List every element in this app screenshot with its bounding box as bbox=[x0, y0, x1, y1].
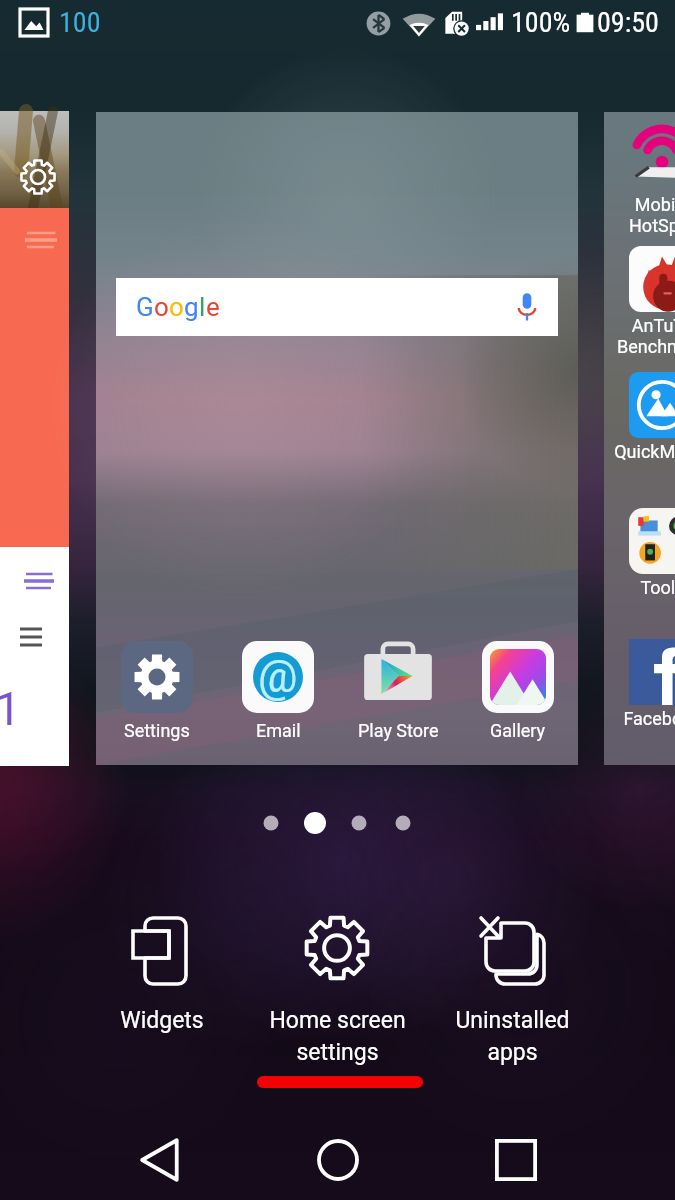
staticText: QuickMemo bbox=[614, 441, 675, 462]
button[interactable]: Gallery bbox=[468, 641, 568, 741]
staticText: Mobile HotSpot bbox=[629, 194, 675, 237]
button[interactable]: Play Store bbox=[348, 641, 448, 741]
staticText: @ bbox=[258, 651, 298, 701]
staticText: Play Store bbox=[358, 720, 439, 741]
button[interactable]: Uninstalled apps bbox=[422, 908, 602, 1068]
staticText: 100 bbox=[59, 6, 101, 39]
button[interactable]: Mobile HotSpot bbox=[612, 125, 675, 237]
button[interactable]: G bbox=[96, 112, 578, 765]
staticText: Widgets bbox=[120, 1007, 204, 1034]
button[interactable]: Settings bbox=[107, 641, 207, 741]
button[interactable]: Widgets bbox=[72, 908, 252, 1068]
staticText: Settings bbox=[124, 720, 190, 741]
staticText: l bbox=[199, 292, 206, 322]
button[interactable]: G bbox=[116, 278, 558, 336]
staticText: 09:50 bbox=[597, 6, 659, 39]
button[interactable]: AnTuTu Benchmark bbox=[612, 246, 675, 358]
staticText: Tools bbox=[640, 577, 675, 598]
button[interactable]: Tools bbox=[612, 508, 675, 598]
staticText: Facebook bbox=[623, 708, 675, 729]
staticText: g bbox=[184, 292, 199, 322]
button[interactable]: Home bbox=[308, 1130, 368, 1190]
staticText: Email bbox=[256, 720, 301, 741]
staticText: e bbox=[206, 292, 220, 322]
staticText: Gallery bbox=[490, 720, 546, 741]
staticText: 100% bbox=[511, 6, 571, 39]
staticText: o bbox=[169, 292, 184, 322]
button[interactable]: Home screen settings bbox=[247, 908, 427, 1068]
button[interactable]: Recent apps bbox=[486, 1130, 546, 1190]
staticText: 1 bbox=[0, 682, 21, 736]
button[interactable]: Back bbox=[130, 1130, 190, 1190]
staticText: Home screen settings bbox=[269, 1007, 406, 1065]
staticText: G bbox=[136, 292, 154, 322]
staticText: o bbox=[154, 292, 169, 322]
button[interactable]: 1 bbox=[0, 111, 69, 766]
button[interactable]: Facebook bbox=[612, 639, 675, 729]
staticText: Uninstalled apps bbox=[455, 1007, 570, 1065]
staticText: AnTuTu Benchmark bbox=[617, 315, 675, 358]
button[interactable]: Mobile HotSpot bbox=[604, 112, 675, 765]
button[interactable]: QuickMemo bbox=[612, 372, 675, 462]
button[interactable]: @ bbox=[228, 641, 328, 741]
